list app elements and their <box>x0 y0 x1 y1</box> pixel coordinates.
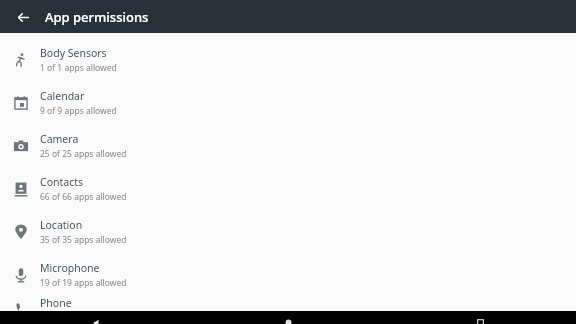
staticText: Location <box>40 218 83 232</box>
staticText: Body Sensors <box>40 46 107 60</box>
button[interactable]: Phone <box>0 296 576 324</box>
button[interactable]: Back <box>10 4 36 30</box>
staticText: Camera <box>40 132 79 146</box>
button[interactable]: Calendar <box>0 81 576 124</box>
staticText: Calendar <box>40 89 85 103</box>
button[interactable]: Back <box>0 311 192 324</box>
button[interactable]: Home <box>192 311 384 324</box>
button[interactable]: Body Sensors <box>0 38 576 81</box>
button[interactable]: Microphone <box>0 253 576 296</box>
button[interactable]: Camera <box>0 124 576 167</box>
staticText: Contacts <box>40 175 84 189</box>
staticText: 19 of 19 apps allowed <box>40 277 127 289</box>
staticText: App permissions <box>45 8 149 26</box>
button[interactable]: Contacts <box>0 167 576 210</box>
staticText: 10 of 10 apps allowed <box>40 312 127 324</box>
button[interactable]: Location <box>0 210 576 253</box>
staticText: 1 of 1 apps allowed <box>40 62 117 74</box>
button[interactable]: Recents <box>384 311 576 324</box>
staticText: 35 of 35 apps allowed <box>40 234 127 246</box>
staticText: 9 of 9 apps allowed <box>40 105 117 117</box>
staticText: Phone <box>40 296 72 310</box>
staticText: 25 of 25 apps allowed <box>40 148 127 160</box>
staticText: 66 of 66 apps allowed <box>40 191 127 203</box>
staticText: Microphone <box>40 261 100 275</box>
